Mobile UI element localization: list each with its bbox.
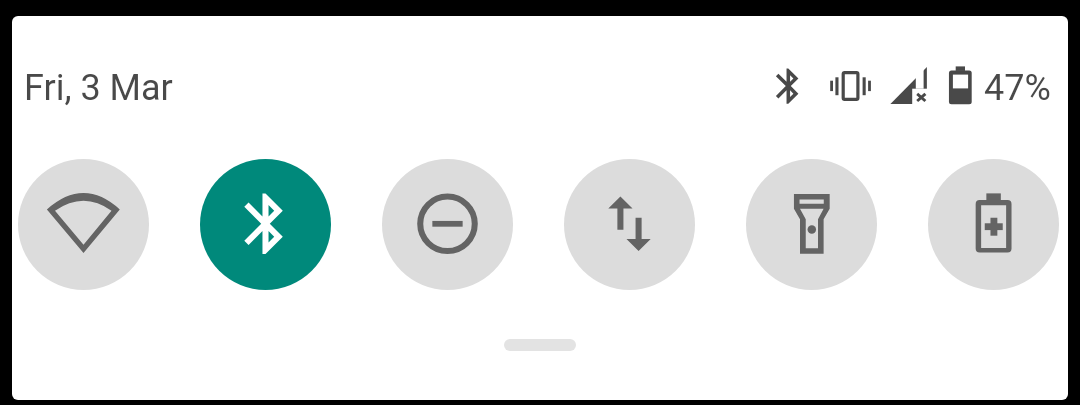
button[interactable]: Bluetooth <box>200 159 331 290</box>
staticText: Fri, 3 Mar <box>24 67 173 109</box>
button[interactable]: Mobile data <box>564 159 695 290</box>
staticText: 47% <box>984 67 1051 109</box>
button[interactable]: Expand quick settings <box>504 339 576 351</box>
button[interactable]: Battery saver <box>928 159 1059 290</box>
button[interactable]: Do not disturb <box>382 159 513 290</box>
button[interactable]: Wi-Fi <box>18 159 149 290</box>
button[interactable]: Flashlight <box>746 159 877 290</box>
